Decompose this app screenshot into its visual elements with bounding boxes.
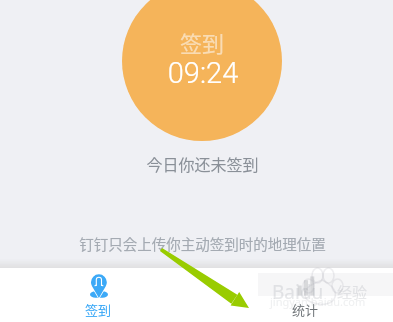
- staticText: 今日你还未签到: [6, 152, 393, 175]
- staticText: jingyan.baidu.com: [270, 294, 366, 309]
- button[interactable]: 签到: [0, 268, 197, 322]
- staticText: 统计: [292, 300, 319, 319]
- staticText: 经验: [337, 281, 368, 303]
- staticText: 签到: [85, 300, 112, 319]
- button[interactable]: 签到打卡: [122, 0, 282, 141]
- other: 签到: [90, 274, 108, 298]
- other: 统计: [297, 274, 315, 298]
- staticText: 09:24: [123, 56, 282, 90]
- staticText: 钉钉只会上传你主动签到时的地理位置: [6, 233, 393, 254]
- button[interactable]: 统计: [207, 268, 393, 322]
- staticText: 签到: [122, 26, 282, 58]
- staticText: Baidu: [272, 279, 324, 305]
